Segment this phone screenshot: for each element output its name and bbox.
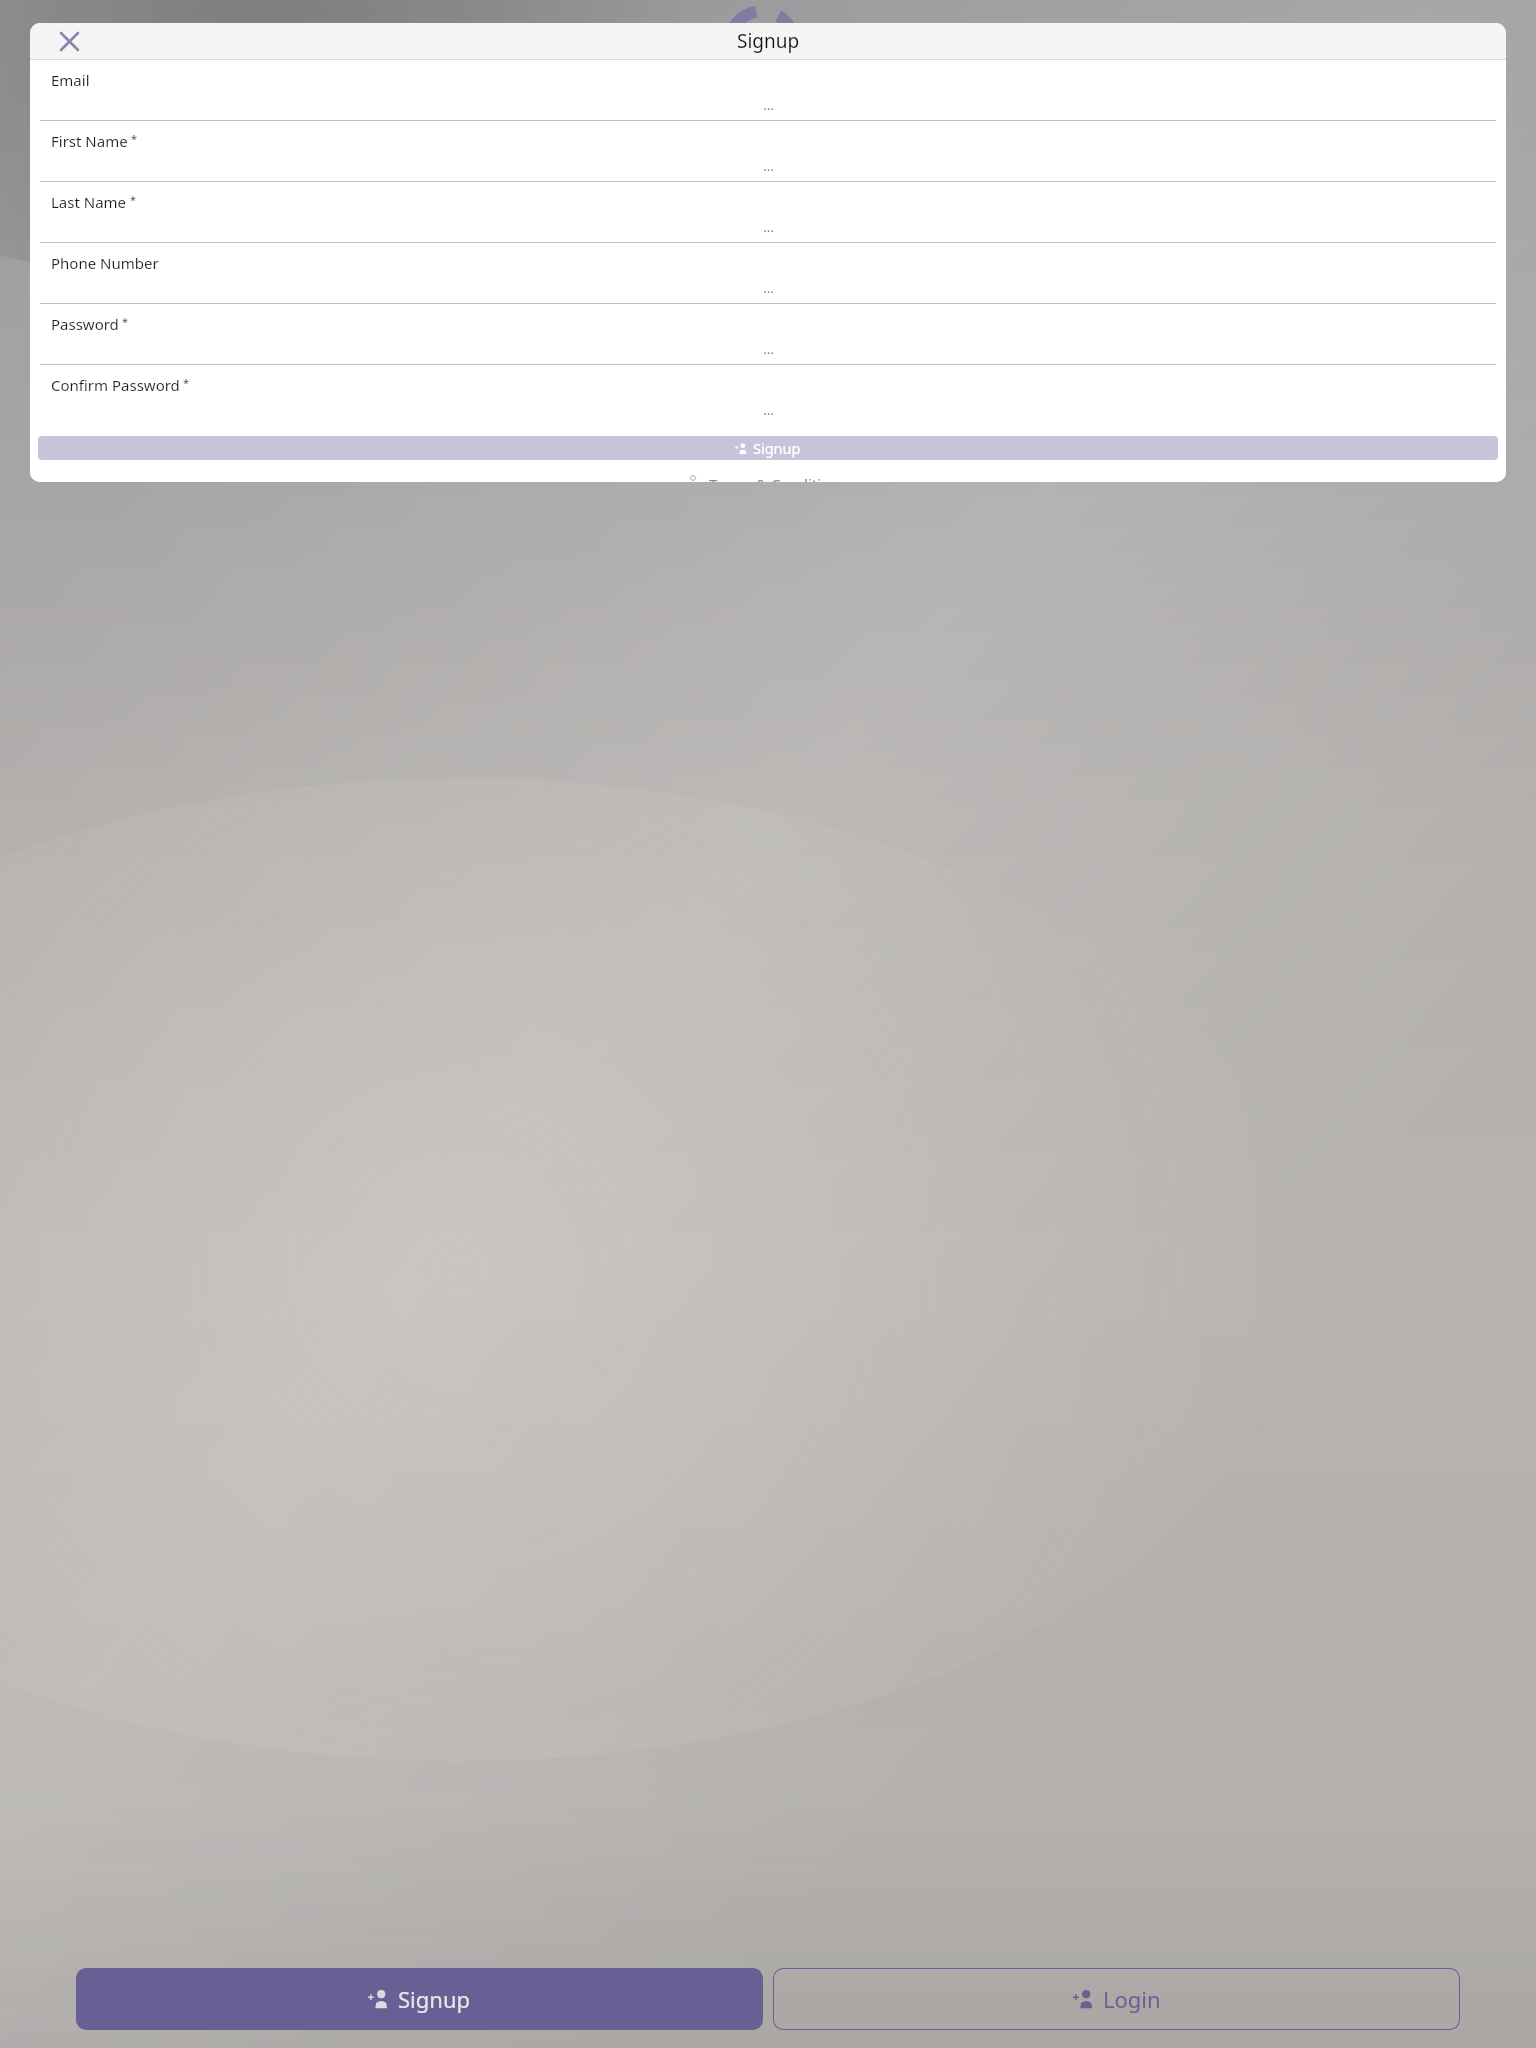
staticText: Confirm Password: [51, 375, 180, 395]
staticText: THE ASIS: [604, 10, 932, 89]
staticText: Phone Number: [51, 253, 159, 273]
staticText: *: [131, 131, 138, 146]
staticText: Signup: [737, 28, 800, 54]
staticText: Signup: [753, 438, 801, 458]
button[interactable]: Login: [773, 1968, 1460, 2030]
staticText: Last Name: [51, 192, 127, 212]
button[interactable]: Phone Number: [30, 243, 1506, 304]
button[interactable]: Confirm Password: [30, 365, 1506, 426]
staticText: *: [183, 375, 190, 390]
staticText: ...: [763, 279, 774, 297]
button[interactable]: Password: [30, 304, 1506, 365]
staticText: Login: [1103, 1984, 1161, 2014]
button[interactable]: First Name: [30, 121, 1506, 182]
button[interactable]: Last Name: [30, 182, 1506, 243]
button[interactable]: Email: [30, 60, 1506, 121]
staticText: ...: [763, 96, 774, 114]
staticText: ...: [763, 401, 774, 419]
staticText: First Name: [51, 131, 128, 151]
staticText: Signup: [398, 1984, 471, 2014]
staticText: Email: [51, 70, 90, 90]
button[interactable]: Terms & Conditions: [30, 474, 1506, 482]
staticText: ...: [763, 340, 774, 358]
button[interactable]: Signup: [76, 1968, 763, 2030]
staticText: ...: [763, 157, 774, 175]
staticText: Password: [51, 314, 119, 334]
staticText: Terms & Conditions: [709, 474, 847, 482]
staticText: *: [122, 314, 129, 329]
button[interactable]: Close: [52, 24, 86, 58]
staticText: ...: [763, 218, 774, 236]
button[interactable]: Signup: [38, 436, 1498, 460]
staticText: *: [130, 192, 137, 207]
